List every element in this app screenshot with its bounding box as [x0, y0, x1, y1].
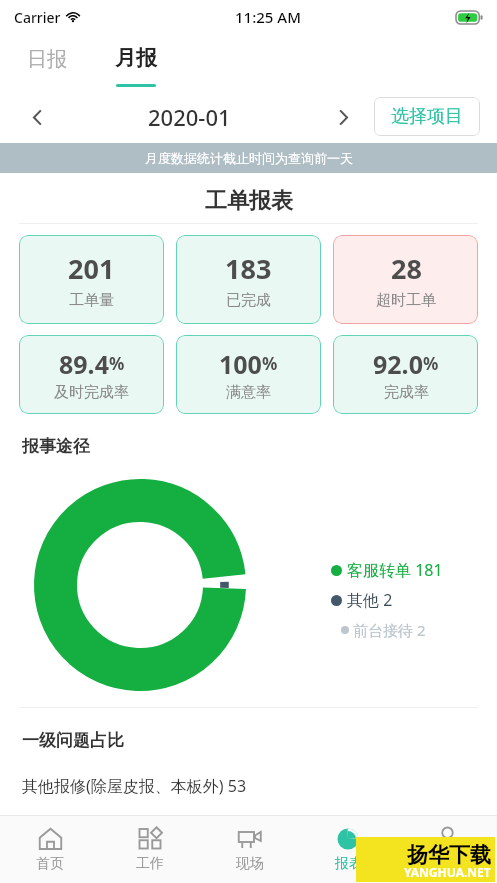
button[interactable]: 我的 [398, 815, 497, 883]
staticText: % [262, 352, 278, 375]
staticText: 扬华下载 [407, 842, 491, 868]
staticText: 报事途径 [22, 436, 90, 457]
staticText: Carrier [14, 8, 61, 27]
button[interactable]: 183 [176, 235, 321, 324]
button[interactable]: 选择项目 [374, 97, 480, 136]
staticText: 2020-01 [148, 102, 231, 132]
button[interactable]: 100 [176, 335, 321, 414]
staticText: % [109, 352, 125, 375]
staticText: 其他报修(除屋皮报、本板外) 53 [22, 775, 247, 797]
staticText: 满意率 [226, 383, 271, 402]
staticText: 100 [219, 347, 262, 381]
button[interactable]: 工作 [100, 815, 200, 883]
staticText: 首页 [36, 855, 64, 873]
staticText: 89.4 [59, 347, 109, 381]
staticText: 完成率 [384, 383, 429, 402]
staticText: % [423, 352, 439, 375]
staticText: 其他 2 [347, 589, 393, 611]
staticText: 月报 [115, 45, 157, 71]
staticText: 客服转单 181 [347, 559, 443, 581]
staticText: 工作 [136, 855, 164, 873]
staticText: 超时工单 [376, 291, 436, 310]
button[interactable]: 首页 [0, 815, 100, 883]
staticText: 工单量 [69, 291, 114, 310]
staticText: 201 [68, 250, 115, 287]
staticText: 一级问题占比 [22, 730, 124, 751]
button[interactable]: 89.4 [19, 335, 164, 414]
staticText: 11:25 AM [235, 7, 301, 27]
staticText: 92.0 [373, 347, 423, 381]
staticText: 及时完成率 [54, 383, 129, 402]
button[interactable]: 现场 [200, 815, 299, 883]
button[interactable]: 月报 [100, 34, 171, 90]
staticText: 选择项目 [391, 105, 463, 128]
staticText: 183 [225, 250, 272, 287]
staticText: 28 [391, 250, 422, 287]
staticText: 我的 [434, 855, 462, 873]
staticText: 日报 [27, 47, 67, 72]
button[interactable]: 92.0 [333, 335, 478, 414]
staticText: 已完成 [226, 291, 271, 310]
button[interactable]: 日报 [12, 34, 82, 90]
staticText: 现场 [236, 855, 264, 873]
button[interactable]: 报表 [299, 815, 398, 883]
staticText: 前台接待 2 [353, 620, 426, 640]
button[interactable]: 201 [19, 235, 164, 324]
staticText: 工单报表 [205, 187, 293, 215]
staticText: 月度数据统计截止时间为查询前一天 [145, 150, 353, 166]
staticText: 报表 [335, 855, 363, 873]
button[interactable]: 28 [333, 235, 478, 324]
button[interactable]: Previous month [20, 100, 54, 134]
staticText: YANGHUA.NET [404, 864, 491, 880]
button[interactable]: Next month [326, 100, 360, 134]
